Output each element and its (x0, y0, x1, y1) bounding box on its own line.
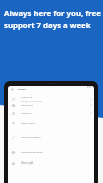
staticText: Contact us (21, 96, 33, 99)
staticText: support 7 days a week (4, 20, 91, 31)
staticText: Disconnect (21, 112, 32, 115)
staticText: Support (18, 88, 26, 91)
staticText: Send a photo (21, 104, 33, 107)
button[interactable]: Refer a friend (8, 121, 94, 125)
button[interactable]: Update billing details (8, 150, 94, 154)
button[interactable]: Send a photo (8, 103, 94, 107)
other: Status icons (87, 86, 91, 88)
button[interactable]: Contact us (8, 96, 94, 102)
staticText: Always here for you, free (4, 8, 101, 19)
button[interactable]: Give a gift (8, 161, 94, 165)
staticText: Update billing details (21, 151, 43, 154)
button[interactable]: Update my details (8, 135, 94, 139)
button[interactable]: Support (8, 87, 94, 92)
staticText: Update my details (21, 136, 41, 139)
button[interactable]: Disconnect (8, 111, 94, 115)
staticText: Refer a friend (21, 122, 35, 125)
staticText: Chat with us 7 days a week (21, 100, 43, 102)
staticText: Give a gift (21, 161, 34, 165)
